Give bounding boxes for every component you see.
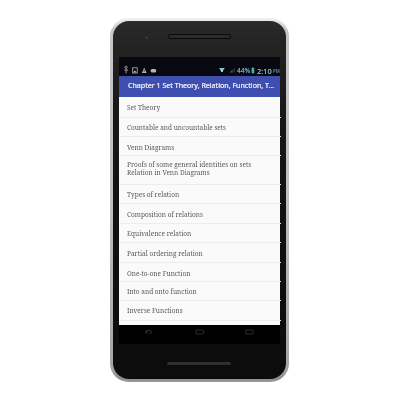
button[interactable]: Inverse Functions (119, 301, 280, 320)
staticText: Set Theory (127, 103, 161, 112)
staticText: Venn Diagrams (127, 143, 175, 152)
staticText: Types of relation (127, 190, 180, 199)
staticText: Countable and uncountable sets (127, 123, 227, 132)
button[interactable]: Composition of relations (119, 204, 280, 224)
button[interactable]: Back (119, 325, 173, 344)
staticText: Chapter 1 Set Theory, Relation, Function… (128, 80, 275, 90)
button[interactable]: Chapter 1 Set Theory, Relation, Function… (119, 76, 280, 97)
button[interactable]: Countable and uncountable sets (119, 118, 280, 137)
staticText: PM (273, 68, 280, 74)
staticText: Into and onto function (127, 287, 197, 296)
button[interactable]: Into and onto function (119, 282, 280, 301)
button[interactable]: Home (173, 325, 227, 344)
button[interactable]: One-to-one Function (119, 263, 280, 283)
staticText: Composition of relations (127, 210, 203, 219)
button[interactable]: Types of relation (119, 185, 280, 204)
button[interactable]: Set Theory (119, 97, 280, 118)
button[interactable]: Recent apps (227, 325, 280, 344)
staticText: Equivalence relation (127, 229, 192, 238)
button[interactable]: Proofs of some general identities on set… (119, 156, 280, 185)
button[interactable]: Partial ordering relation (119, 243, 280, 263)
staticText: 44% (237, 66, 251, 75)
button[interactable]: Equivalence relation (119, 224, 280, 243)
staticText: Partial ordering relation (127, 249, 203, 258)
staticText: Proofs of some general identities on set… (127, 160, 252, 177)
staticText: Inverse Functions (127, 306, 183, 315)
button[interactable]: Venn Diagrams (119, 137, 280, 157)
staticText: One-to-one Function (127, 269, 191, 278)
staticText: 2:10 (257, 66, 272, 76)
